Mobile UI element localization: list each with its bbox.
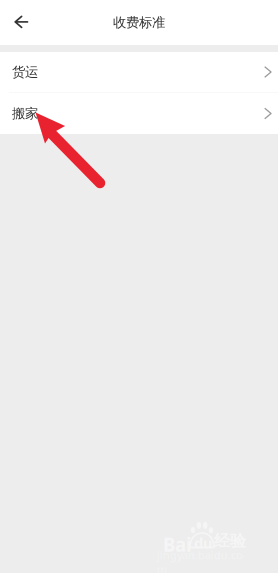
button[interactable]: Back	[0, 0, 41, 45]
button[interactable]: 货运	[0, 52, 278, 92]
staticText: Bai	[163, 532, 192, 557]
staticText: du	[194, 533, 213, 552]
staticText: 搬家	[12, 105, 38, 122]
staticText: 收费标准	[113, 14, 165, 31]
staticText: 货运	[12, 64, 38, 80]
button[interactable]: 搬家	[0, 93, 278, 134]
staticText: 经验	[214, 531, 246, 551]
